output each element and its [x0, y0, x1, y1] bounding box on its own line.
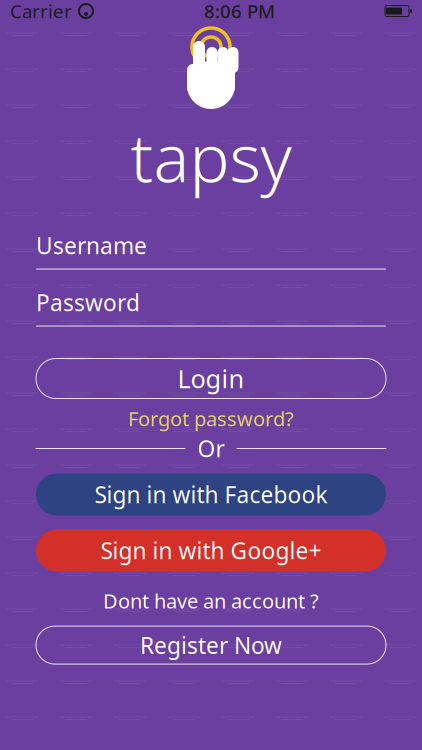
- staticText: Password: [36, 287, 140, 318]
- staticText: Dont have an account ?: [103, 587, 319, 614]
- button[interactable]: Forgot password?: [36, 407, 386, 429]
- button[interactable]: Sign in with Google+: [36, 529, 386, 571]
- staticText: Login: [177, 362, 244, 395]
- staticText: Register Now: [140, 630, 282, 660]
- staticText: Username: [36, 230, 147, 261]
- staticText: Carrier: [10, 0, 72, 23]
- staticText: Forgot password?: [128, 405, 294, 432]
- button[interactable]: Sign in with Facebook: [36, 473, 386, 515]
- staticText: Sign in with Facebook: [94, 479, 327, 510]
- button[interactable]: Login: [36, 358, 386, 398]
- button[interactable]: Register Now: [36, 626, 386, 664]
- staticText: tapsy: [130, 112, 291, 200]
- staticText: Sign in with Google+: [100, 535, 321, 566]
- staticText: 8:06 PM: [204, 0, 275, 23]
- staticText: Or: [197, 433, 224, 464]
